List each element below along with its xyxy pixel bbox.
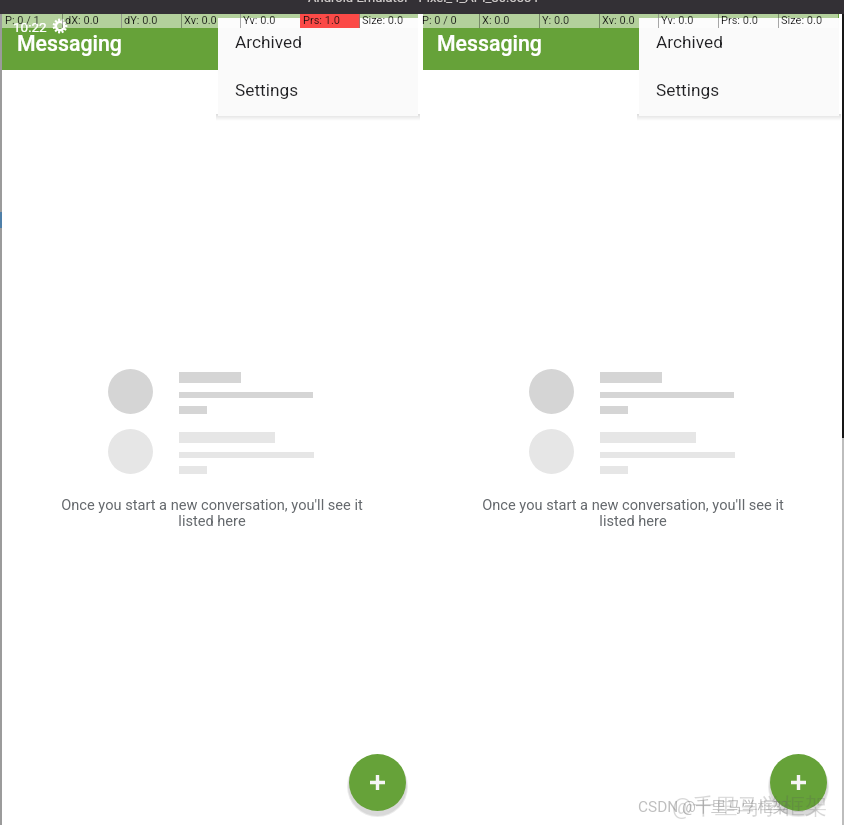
button[interactable]: Archived [218,18,418,66]
staticText: Once you start a new conversation, you'l… [47,496,377,529]
staticText: Messaging [17,31,122,56]
staticText: Archived [656,32,723,52]
button[interactable]: Start new conversation [349,754,406,811]
staticText: Messaging [437,31,542,56]
staticText: dX: 0.0 [65,14,99,27]
button[interactable]: Settings [639,66,839,114]
staticText: dY: 0.0 [124,14,158,27]
staticText: Xv: 0.0 [184,14,217,27]
staticText: Android Emulator - Pixel_4_API_30:5554 [308,0,539,4]
staticText: P: 0 / 1 [5,14,40,27]
staticText: Prs: 0.0 [721,14,759,27]
staticText: Size: 0.0 [362,14,404,27]
staticText: X: 0.0 [482,14,510,27]
button[interactable]: Settings [218,66,418,114]
button[interactable]: Start new conversation [770,754,827,811]
staticText: Yv: 0.0 [661,14,694,27]
staticText: Y: 0.0 [542,14,570,27]
staticText: Once you start a new conversation, you'l… [468,496,798,529]
staticText: @千里马学框架 [672,792,828,820]
staticText: Settings [656,80,720,100]
staticText: Xv: 0.0 [602,14,635,27]
staticText: Settings [235,80,299,100]
staticText: 10:22 [13,19,47,35]
staticText: Size: 0.0 [781,14,823,27]
staticText: Yv: 0.0 [243,14,276,27]
staticText: CSDN @千里马学框架 [638,797,789,816]
staticText: Prs: 1.0 [303,14,341,27]
button[interactable]: Archived [639,18,839,66]
staticText: Archived [235,32,302,52]
staticText: P: 0 / 0 [422,14,457,27]
